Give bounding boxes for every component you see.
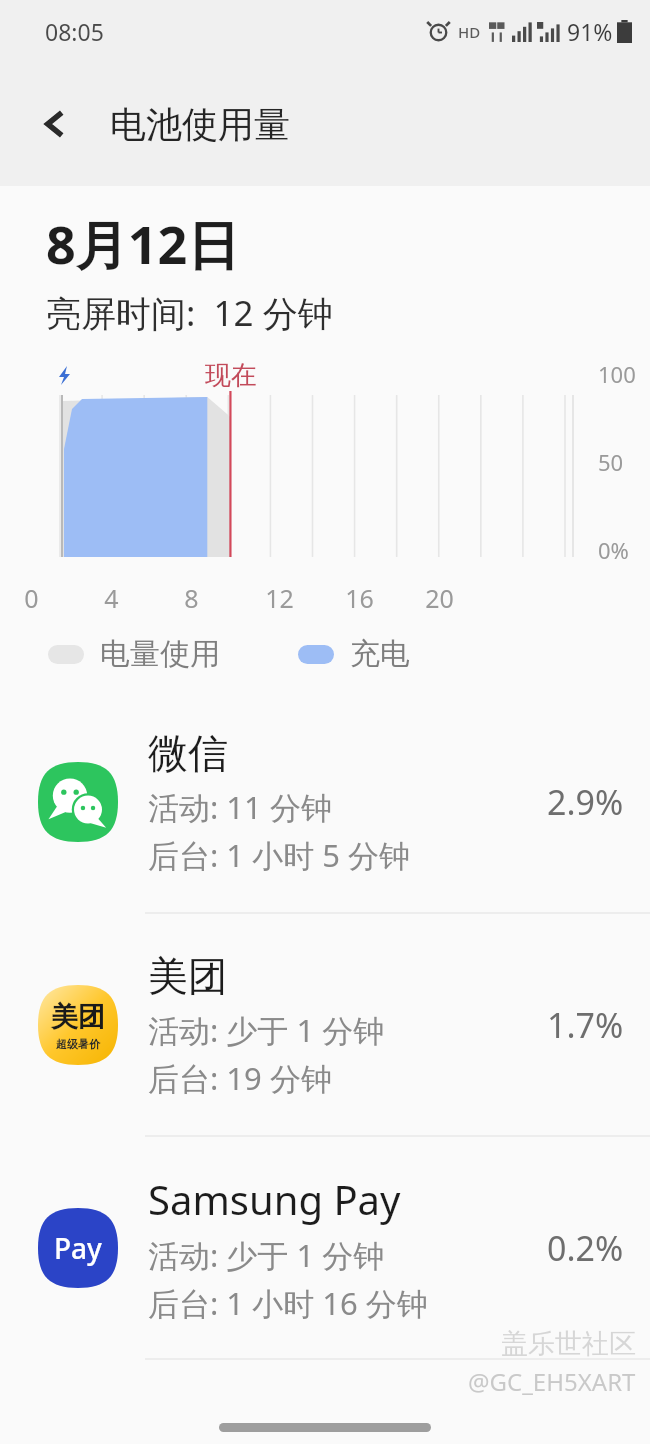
staticText: @GC_EH5XART — [468, 1365, 636, 1398]
staticText: 4 — [104, 581, 119, 615]
staticText: 16 — [345, 581, 374, 615]
button[interactable]: Back — [26, 94, 86, 154]
staticText: 0.2% — [547, 1225, 624, 1271]
button[interactable]: 美团 — [0, 914, 650, 1135]
staticText: 活动: 少于 1 分钟 — [148, 1234, 385, 1276]
staticText: 08:05 — [45, 16, 104, 47]
staticText: 电池使用量 — [110, 102, 290, 147]
staticText: 50 — [598, 447, 624, 477]
staticText: 超级暑价 — [56, 1037, 100, 1051]
staticText: Samsung Pay — [148, 1172, 401, 1226]
staticText: 100 — [598, 359, 636, 389]
staticText: 12 — [265, 581, 294, 615]
staticText: 电量使用 — [100, 635, 220, 673]
staticText: 后台: 1 小时 16 分钟 — [148, 1282, 428, 1324]
staticText: 后台: 19 分钟 — [148, 1057, 332, 1099]
staticText: 亮屏时间: 12 分钟 — [46, 289, 333, 337]
staticText: 0 — [24, 581, 39, 615]
staticText: 8 — [184, 581, 199, 615]
staticText: 现在 — [205, 359, 257, 392]
staticText: 91% — [567, 16, 613, 47]
staticText: 活动: 11 分钟 — [148, 786, 332, 828]
staticText: 美团 — [148, 951, 228, 1001]
staticText: 微信 — [148, 728, 228, 778]
staticText: HD — [458, 22, 481, 42]
staticText: 后台: 1 小时 5 分钟 — [148, 834, 411, 876]
staticText: 0% — [598, 535, 629, 565]
staticText: 20 — [425, 581, 454, 615]
staticText: 盖乐世社区 — [501, 1327, 636, 1361]
staticText: 充电 — [350, 635, 410, 673]
staticText: 活动: 少于 1 分钟 — [148, 1009, 385, 1051]
staticText: 2.9% — [547, 779, 624, 825]
button[interactable]: 微信 — [0, 691, 650, 912]
staticText: Pay — [54, 1229, 102, 1267]
staticText: 8月12日 — [46, 208, 240, 279]
staticText: 1.7% — [547, 1002, 624, 1048]
staticText: 美团 — [51, 1000, 105, 1034]
button[interactable]: Pay — [0, 1137, 650, 1358]
